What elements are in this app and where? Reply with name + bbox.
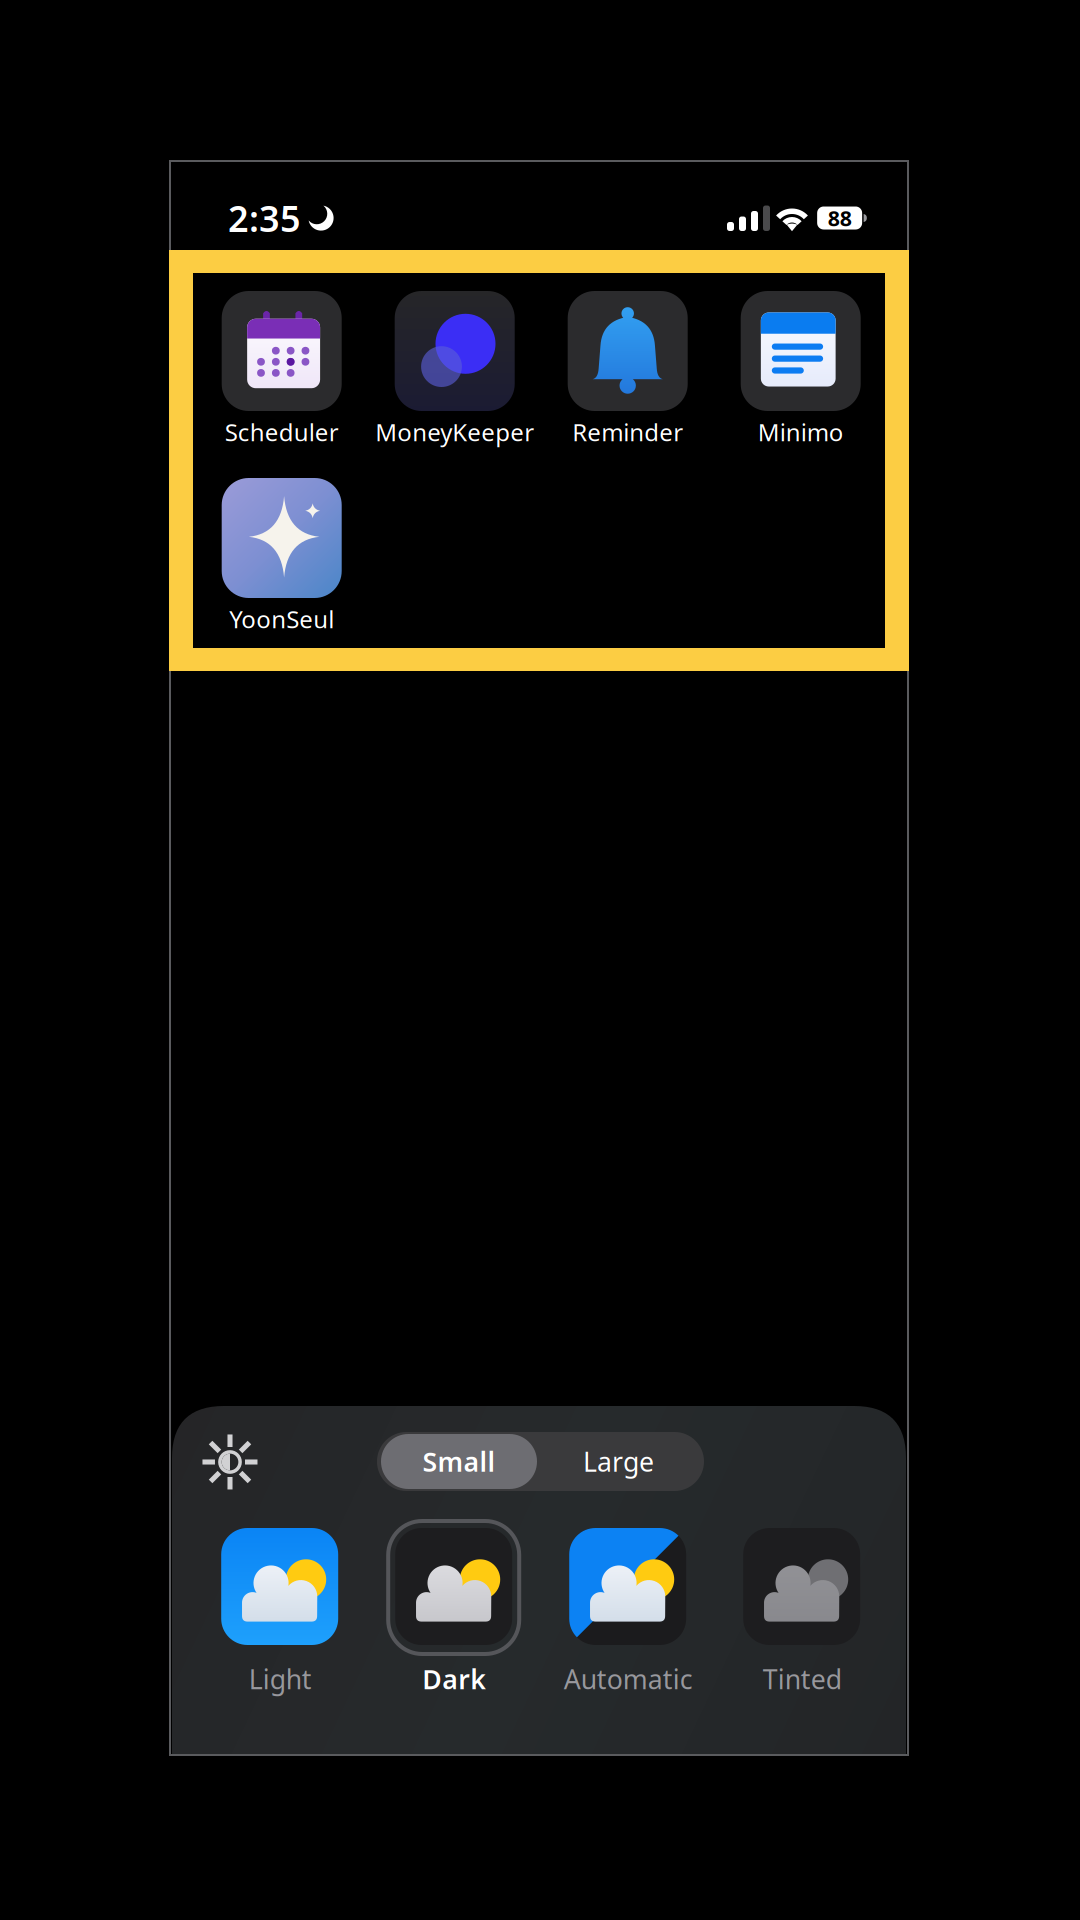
staticText: MoneyKeeper xyxy=(375,416,534,448)
button[interactable]: Large xyxy=(537,1434,700,1489)
staticText: Small xyxy=(422,1444,495,1479)
button[interactable]: Scheduler xyxy=(195,291,368,451)
button[interactable]: Tinted xyxy=(716,1528,888,1698)
staticText: Automatic xyxy=(564,1661,693,1697)
button[interactable]: Minimo xyxy=(714,291,887,451)
staticText: Dark xyxy=(422,1661,486,1697)
button[interactable]: Dark xyxy=(368,1528,540,1698)
staticText: Large xyxy=(583,1444,654,1479)
button[interactable]: Reminder xyxy=(541,291,714,451)
button[interactable]: Light xyxy=(194,1528,366,1698)
staticText: Tinted xyxy=(763,1661,842,1697)
staticText: Light xyxy=(249,1661,312,1697)
staticText: Minimo xyxy=(758,416,844,448)
staticText: 88 xyxy=(828,204,852,232)
staticText: Reminder xyxy=(572,416,683,448)
staticText: 2:35 xyxy=(228,194,301,242)
button[interactable]: MoneyKeeper xyxy=(368,291,541,451)
staticText: Scheduler xyxy=(225,416,339,448)
button[interactable]: YoonSeul xyxy=(195,478,368,638)
staticText: YoonSeul xyxy=(229,603,334,635)
button[interactable]: Automatic xyxy=(542,1528,714,1698)
button[interactable]: Small xyxy=(381,1434,537,1489)
